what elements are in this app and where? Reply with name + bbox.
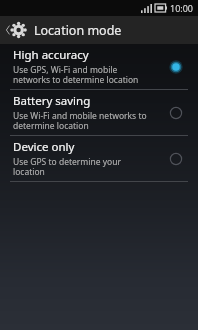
- staticText: Use GPS, Wi-Fi and mobile networks to de…: [13, 64, 139, 86]
- staticText: Location mode: [34, 22, 122, 39]
- button[interactable]: Back: [0, 16, 198, 44]
- button[interactable]: Battery saving: [0, 90, 198, 135]
- staticText: Battery saving: [13, 93, 91, 109]
- staticText: High accuracy: [13, 47, 89, 63]
- staticText: Use GPS to determine your location: [13, 156, 121, 178]
- staticText: 10:00: [170, 2, 194, 14]
- button[interactable]: High accuracy: [0, 44, 198, 89]
- staticText: Use Wi-Fi and mobile networks to determi…: [13, 110, 147, 132]
- other: Back: [3, 17, 29, 43]
- staticText: Device only: [13, 139, 75, 155]
- button[interactable]: Device only: [0, 136, 198, 181]
